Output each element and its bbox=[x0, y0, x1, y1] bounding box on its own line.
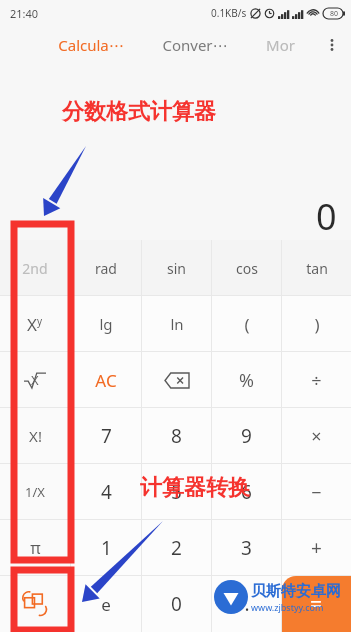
staticText: 2nd bbox=[22, 259, 48, 278]
staticText: e bbox=[101, 593, 111, 616]
button[interactable]: 0 bbox=[142, 576, 211, 632]
staticText: = bbox=[310, 590, 323, 619]
staticText: 6 bbox=[241, 479, 252, 505]
staticText: y bbox=[37, 314, 43, 328]
staticText: 0 bbox=[171, 591, 182, 617]
button[interactable]: 1/X bbox=[0, 464, 70, 520]
button[interactable]: 7 bbox=[71, 408, 141, 464]
staticText: ln bbox=[170, 314, 184, 334]
button[interactable]: Delete bbox=[142, 352, 211, 408]
button[interactable]: . bbox=[212, 576, 281, 632]
button[interactable]: ) bbox=[282, 296, 351, 352]
staticText: ) bbox=[314, 313, 320, 336]
button[interactable]: X to the power of Y bbox=[0, 296, 70, 352]
staticText: π bbox=[30, 537, 41, 559]
staticText: lg bbox=[99, 314, 113, 334]
staticText: 2 bbox=[171, 535, 182, 561]
button[interactable]: ln bbox=[142, 296, 211, 352]
staticText: AC bbox=[95, 369, 117, 392]
staticText: × bbox=[311, 424, 322, 449]
staticText: X bbox=[31, 371, 39, 389]
staticText: − bbox=[311, 480, 322, 505]
button[interactable]: = bbox=[282, 576, 351, 632]
button[interactable]: Conver⋯ bbox=[158, 35, 232, 55]
button[interactable]: sin bbox=[142, 240, 211, 296]
staticText: . bbox=[244, 591, 250, 617]
button[interactable]: π bbox=[0, 520, 70, 576]
button[interactable]: More options bbox=[321, 34, 343, 56]
staticText: 80 bbox=[330, 9, 339, 19]
button[interactable]: % bbox=[212, 352, 281, 408]
staticText: 9 bbox=[241, 423, 252, 449]
staticText: 1 bbox=[101, 535, 112, 561]
button[interactable]: 9 bbox=[212, 408, 281, 464]
staticText: sin bbox=[167, 259, 186, 278]
button[interactable]: 1 bbox=[71, 520, 141, 576]
staticText: 分数格式计算器 bbox=[62, 98, 216, 126]
staticText: 0.1KB/s bbox=[211, 6, 247, 20]
staticText: Mor bbox=[266, 35, 295, 55]
staticText: 3 bbox=[241, 535, 252, 561]
button[interactable]: Switch calculator bbox=[0, 576, 70, 632]
staticText: tan bbox=[306, 259, 328, 278]
staticText: 8 bbox=[171, 423, 182, 449]
button[interactable]: Square root bbox=[0, 352, 70, 408]
button[interactable]: e bbox=[71, 576, 141, 632]
button[interactable]: 2 bbox=[142, 520, 211, 576]
staticText: cos bbox=[236, 259, 258, 278]
staticText: X! bbox=[29, 426, 42, 446]
staticText: rad bbox=[95, 259, 117, 278]
button[interactable]: 2nd bbox=[0, 240, 70, 296]
staticText: Conver⋯ bbox=[162, 35, 228, 55]
button[interactable]: ÷ bbox=[282, 352, 351, 408]
staticText: ÷ bbox=[311, 368, 322, 393]
staticText: X bbox=[27, 313, 37, 336]
button[interactable]: Equals bbox=[282, 576, 351, 632]
button[interactable]: ( bbox=[212, 296, 281, 352]
button[interactable]: 4 bbox=[71, 464, 141, 520]
button[interactable]: + bbox=[282, 520, 351, 576]
staticText: 贝斯特安卓网 bbox=[251, 582, 341, 601]
staticText: 4 bbox=[101, 479, 112, 505]
button[interactable]: Mor bbox=[262, 35, 299, 55]
button[interactable]: 3 bbox=[212, 520, 281, 576]
staticText: Calcula⋯ bbox=[58, 35, 124, 55]
button[interactable]: X! bbox=[0, 408, 70, 464]
staticText: www.zjbstyy.com bbox=[251, 601, 324, 613]
button[interactable]: Calcula⋯ bbox=[54, 35, 128, 55]
staticText: 0 bbox=[316, 192, 337, 240]
button[interactable]: lg bbox=[71, 296, 141, 352]
staticText: 7 bbox=[101, 423, 112, 449]
staticText: 21:40 bbox=[10, 6, 39, 21]
button[interactable]: AC bbox=[71, 352, 141, 408]
button[interactable]: cos bbox=[212, 240, 281, 296]
staticText: 1/X bbox=[25, 483, 45, 501]
staticText: 计算器转换 bbox=[140, 474, 250, 502]
button[interactable]: 8 bbox=[142, 408, 211, 464]
button[interactable]: × bbox=[282, 408, 351, 464]
button[interactable]: 6 bbox=[212, 464, 281, 520]
button[interactable]: 5 bbox=[142, 464, 211, 520]
button[interactable]: − bbox=[282, 464, 351, 520]
staticText: ( bbox=[244, 313, 250, 336]
button[interactable]: rad bbox=[71, 240, 141, 296]
staticText: 5 bbox=[171, 479, 182, 505]
staticText: % bbox=[239, 368, 254, 393]
button[interactable]: tan bbox=[282, 240, 351, 296]
staticText: + bbox=[311, 535, 322, 561]
